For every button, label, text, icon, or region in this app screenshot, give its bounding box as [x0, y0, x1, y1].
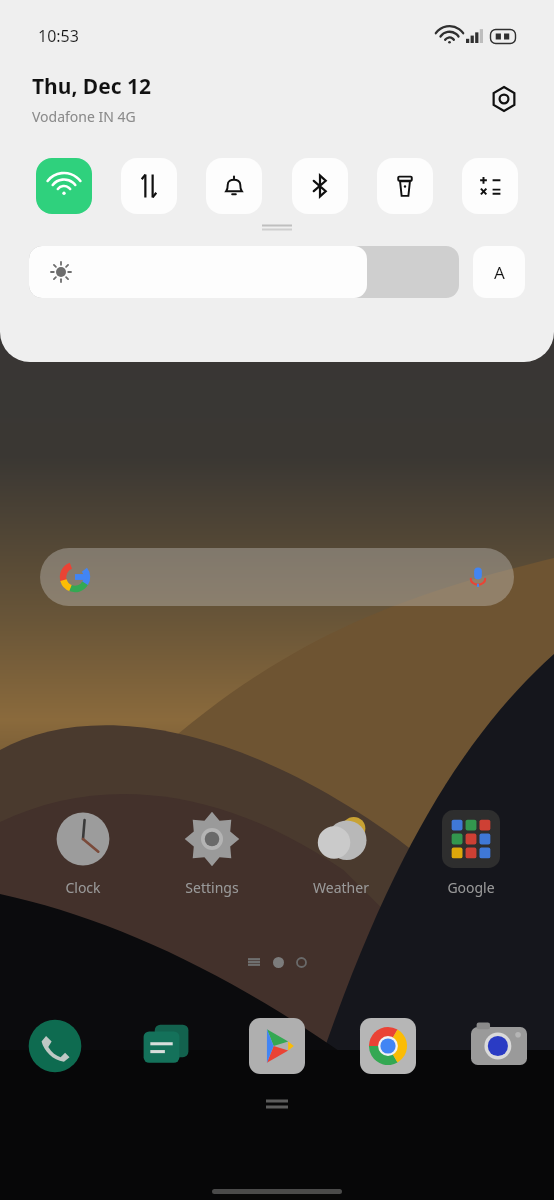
staticText: Google	[447, 878, 495, 897]
button[interactable]: Flashlight	[377, 158, 433, 214]
button[interactable]: Camera	[468, 1015, 530, 1077]
button[interactable]: Bluetooth	[292, 158, 348, 214]
staticText: 10:53	[38, 25, 79, 47]
button[interactable]: Brightness	[29, 246, 459, 298]
button[interactable]: Chrome	[357, 1015, 419, 1077]
staticText: Vodafone IN 4G	[32, 107, 136, 126]
staticText: Thu, Dec 12	[32, 72, 152, 101]
button[interactable]: Weather	[276, 808, 406, 899]
staticText: Settings	[185, 878, 239, 897]
button[interactable]: Clock	[18, 808, 147, 899]
button[interactable]: Mobile data	[121, 158, 177, 214]
button[interactable]: Settings	[484, 79, 524, 119]
button[interactable]: Wi-Fi	[36, 158, 92, 214]
button[interactable]: Google	[406, 808, 536, 899]
button[interactable]: Calculator	[462, 158, 518, 214]
button[interactable]: Messages	[135, 1015, 197, 1077]
button[interactable]: Phone	[24, 1015, 86, 1077]
staticText: Clock	[65, 878, 101, 897]
button[interactable]: Play Store	[246, 1015, 308, 1077]
staticText: Weather	[313, 878, 369, 897]
button[interactable]: Ring mode	[206, 158, 262, 214]
staticText: A	[494, 261, 505, 284]
button[interactable]: Settings	[147, 808, 276, 899]
button[interactable]: Google search	[40, 548, 514, 606]
button[interactable]: A	[473, 246, 525, 298]
